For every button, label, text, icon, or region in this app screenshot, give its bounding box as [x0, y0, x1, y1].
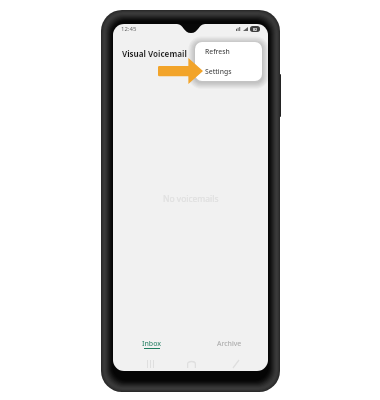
staticText: Inbox: [142, 339, 162, 349]
staticText: 12:45: [121, 25, 137, 33]
staticText: Visual Voicemail: [122, 48, 187, 59]
button[interactable]: Back: [228, 357, 244, 371]
staticText: No voicemails: [163, 193, 219, 205]
button[interactable]: Settings: [195, 61, 262, 81]
button[interactable]: Recents: [142, 357, 158, 371]
button[interactable]: Home: [183, 357, 199, 371]
button[interactable]: Archive: [190, 335, 268, 357]
staticText: 82: [253, 27, 258, 32]
button[interactable]: Visual Voicemail: [113, 38, 268, 66]
button[interactable]: Refresh: [195, 42, 262, 61]
button[interactable]: Inbox: [113, 335, 190, 357]
staticText: Archive: [217, 339, 242, 349]
staticText: Refresh: [205, 47, 230, 56]
other: Power button: [276, 74, 281, 117]
staticText: Settings: [205, 67, 232, 76]
